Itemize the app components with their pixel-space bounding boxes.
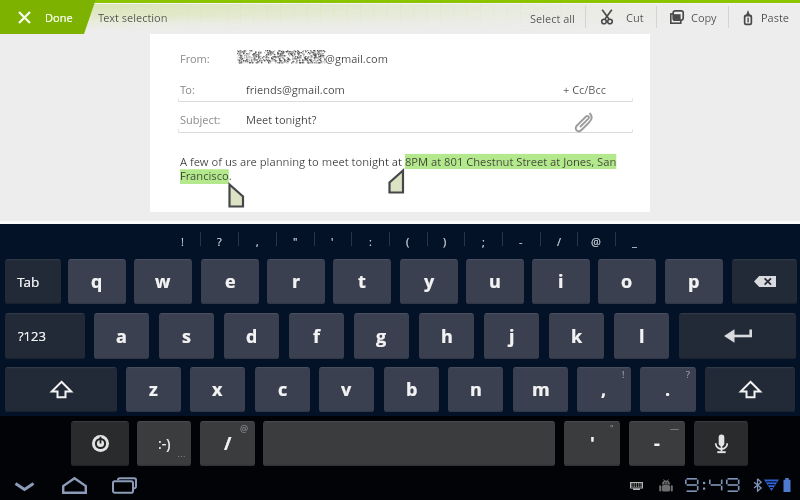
button[interactable]: s xyxy=(159,313,214,359)
staticText: ( xyxy=(406,234,410,249)
staticText: friends@gmail.com xyxy=(246,82,345,97)
button[interactable]: , xyxy=(240,228,274,254)
button[interactable]: n xyxy=(448,367,503,412)
button[interactable]: ' xyxy=(315,228,349,254)
button[interactable]: + Cc/Bcc xyxy=(563,82,606,97)
staticText: ? xyxy=(686,368,690,380)
staticText: - xyxy=(519,234,523,249)
button[interactable]: ?123 xyxy=(5,313,85,359)
button[interactable]: Copy xyxy=(664,0,723,34)
staticText: ' xyxy=(590,431,595,456)
button[interactable]: Keyboard settings xyxy=(71,421,129,466)
button[interactable]: i xyxy=(532,259,590,304)
staticText: u xyxy=(489,269,501,294)
button[interactable]: b xyxy=(384,367,439,412)
button[interactable]: Hide keyboard xyxy=(8,471,40,500)
staticText: Meet tonight? xyxy=(246,112,317,127)
button[interactable]: p xyxy=(665,259,723,304)
staticText: Paste xyxy=(761,10,790,25)
button[interactable]: r xyxy=(267,259,325,304)
button[interactable]: q xyxy=(68,259,126,304)
staticText: @ xyxy=(591,234,601,249)
button[interactable]: Paste xyxy=(737,0,796,34)
button[interactable]: ? xyxy=(202,228,236,254)
button[interactable]: ; xyxy=(466,228,500,254)
button[interactable]: Enter xyxy=(679,313,796,359)
button[interactable]: Select all xyxy=(522,0,583,34)
staticText: - xyxy=(654,431,660,456)
staticText: s xyxy=(182,324,191,349)
staticText: ! xyxy=(622,368,625,380)
staticText: To: xyxy=(180,82,195,97)
staticText: f xyxy=(313,324,320,349)
button[interactable]: Backspace xyxy=(732,259,797,304)
button[interactable]: / xyxy=(200,421,255,466)
staticText: g xyxy=(376,324,387,349)
staticText: ; xyxy=(482,234,485,249)
button[interactable]: ( xyxy=(391,228,425,254)
button[interactable]: " xyxy=(278,228,312,254)
button[interactable]: ) xyxy=(428,228,462,254)
button[interactable]: Shift xyxy=(5,367,117,412)
button[interactable]: h xyxy=(419,313,474,359)
button[interactable]: Shift xyxy=(705,367,795,412)
button[interactable]: ! xyxy=(165,228,199,254)
staticText: From: xyxy=(180,51,210,66)
staticText: d xyxy=(246,324,258,349)
button[interactable]: d xyxy=(224,313,279,359)
button[interactable]: o xyxy=(598,259,656,304)
button[interactable]: ' xyxy=(564,421,620,466)
button[interactable]: m xyxy=(513,367,568,412)
staticText: :-) xyxy=(158,434,171,453)
button[interactable]: c xyxy=(255,367,310,412)
button[interactable]: f xyxy=(289,313,344,359)
button[interactable]: / xyxy=(542,228,576,254)
staticText: " xyxy=(610,422,614,434)
button[interactable]: t xyxy=(333,259,391,304)
staticText: e xyxy=(225,269,236,294)
staticText: c xyxy=(278,377,288,402)
button[interactable]: @ xyxy=(579,228,613,254)
button[interactable]: : xyxy=(353,228,387,254)
button[interactable]: - xyxy=(504,228,538,254)
button[interactable]: l xyxy=(614,313,669,359)
button[interactable]: j xyxy=(484,313,539,359)
staticText: ?123 xyxy=(18,327,46,345)
button[interactable]: - xyxy=(629,421,685,466)
button[interactable]: ⋯ xyxy=(137,421,191,466)
button[interactable]: v xyxy=(319,367,374,412)
staticText: , xyxy=(256,234,259,249)
button[interactable]: Tab xyxy=(5,259,61,304)
button[interactable]: k xyxy=(549,313,604,359)
button[interactable]: , xyxy=(577,367,631,412)
staticText: a xyxy=(116,324,127,349)
staticText: " xyxy=(293,234,298,249)
staticText: _ xyxy=(632,234,637,249)
button[interactable]: Voice input xyxy=(694,421,748,466)
button[interactable]: . xyxy=(640,367,696,412)
staticText: t xyxy=(358,269,366,294)
button[interactable]: x xyxy=(190,367,245,412)
button[interactable]: Home xyxy=(58,469,90,500)
button[interactable]: _ xyxy=(617,228,651,254)
staticText: — xyxy=(670,422,679,434)
button[interactable]: Cut xyxy=(594,0,651,34)
button[interactable]: Recent apps xyxy=(108,469,140,500)
button[interactable]: w xyxy=(134,259,192,304)
staticText: ' xyxy=(331,234,334,249)
button[interactable]: Attach file xyxy=(569,107,599,137)
staticText: Copy xyxy=(691,10,717,25)
staticText: x xyxy=(212,377,223,402)
staticText: l xyxy=(639,324,645,349)
button[interactable]: y xyxy=(400,259,458,304)
button[interactable]: Done xyxy=(0,0,84,34)
button[interactable]: u xyxy=(466,259,524,304)
staticText: y xyxy=(424,269,435,294)
button[interactable]: e xyxy=(201,259,259,304)
staticText: b xyxy=(406,377,418,402)
button[interactable]: a xyxy=(94,313,149,359)
staticText: @ xyxy=(240,422,249,434)
button[interactable]: z xyxy=(126,367,181,412)
button[interactable]: g xyxy=(354,313,409,359)
